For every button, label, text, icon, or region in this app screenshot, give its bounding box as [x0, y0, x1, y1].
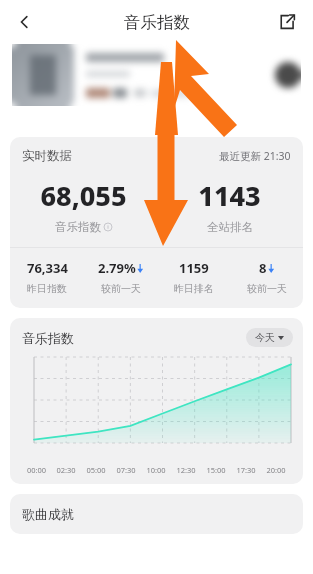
staticText: 1143: [198, 177, 261, 214]
staticText: 音乐指数: [22, 330, 74, 346]
staticText: 2.79%: [98, 259, 136, 277]
staticText: 00:00: [22, 465, 51, 475]
button[interactable]: 8: [230, 259, 303, 295]
button[interactable]: 今天: [246, 328, 293, 347]
staticText: 17:30: [231, 465, 261, 475]
staticText: 10:00: [141, 465, 171, 475]
button[interactable]: 1159: [157, 259, 230, 295]
button[interactable]: Share: [267, 2, 307, 42]
staticText: 音乐指数: [55, 220, 101, 234]
button[interactable]: Back: [4, 2, 44, 42]
staticText: 实时数据: [22, 148, 72, 164]
staticText: 全站排名: [207, 220, 253, 234]
button[interactable]: 68,055: [10, 177, 156, 234]
staticText: 07:30: [111, 465, 141, 475]
button[interactable]: 2.79%: [84, 259, 157, 295]
staticText: 05:00: [81, 465, 111, 475]
staticText: 1159: [179, 259, 209, 277]
staticText: 今天: [255, 331, 275, 344]
staticText: 20:00: [261, 465, 291, 475]
staticText: 68,055: [40, 177, 127, 214]
staticText: 15:00: [201, 465, 231, 475]
staticText: 02:30: [51, 465, 81, 475]
staticText: 音乐指数: [124, 12, 190, 33]
button[interactable]: 76,334: [10, 259, 84, 295]
staticText: 昨日指数: [27, 282, 67, 295]
staticText: 12:30: [171, 465, 201, 475]
staticText: 最近更新 21:30: [219, 149, 291, 163]
staticText: 76,334: [27, 259, 68, 277]
button[interactable]: 1143: [156, 177, 303, 234]
staticText: 昨日排名: [174, 282, 214, 295]
staticText: 较前一天: [101, 282, 141, 295]
staticText: 较前一天: [247, 282, 287, 295]
staticText: 歌曲成就: [22, 506, 74, 522]
staticText: 8: [259, 259, 267, 277]
